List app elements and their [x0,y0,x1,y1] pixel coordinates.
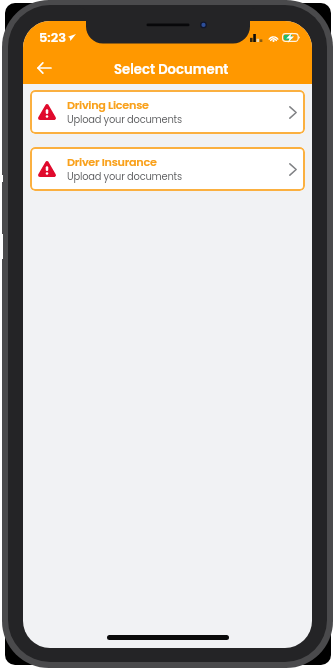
staticText: 5:23 [39,28,67,46]
button[interactable]: Back [29,53,59,83]
button[interactable]: Driving License [30,90,305,134]
staticText: Driving License [67,97,149,113]
staticText: Select Document [114,60,229,78]
staticText: Driver Insurance [67,154,157,170]
staticText: Upload your documents [67,170,182,184]
staticText: Upload your documents [67,113,182,127]
button[interactable]: Driver Insurance [30,147,305,191]
